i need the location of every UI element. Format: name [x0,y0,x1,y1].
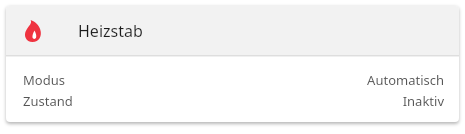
staticText: Automatisch [367,71,444,89]
button[interactable]: Heizstab [6,6,459,122]
staticText: Modus [23,71,65,89]
staticText: Inaktiv [402,92,444,110]
staticText: Zustand [23,92,73,110]
staticText: Heizstab [78,20,143,42]
